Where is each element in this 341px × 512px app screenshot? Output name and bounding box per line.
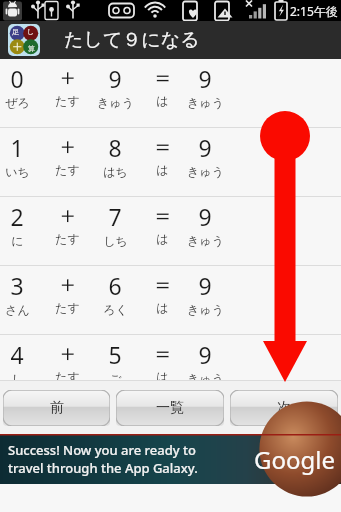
staticText: 9 bbox=[198, 201, 212, 232]
staticText: は bbox=[156, 300, 169, 315]
staticText: きゅう bbox=[187, 302, 224, 317]
staticText: たして９になる bbox=[64, 28, 200, 52]
staticText: Success! Now you are ready to bbox=[8, 441, 196, 459]
staticText: きゅう bbox=[187, 371, 224, 385]
staticText: ろく bbox=[103, 302, 128, 317]
button[interactable]: Success! Now you are ready to bbox=[0, 434, 341, 484]
staticText: ＋ bbox=[56, 201, 79, 230]
staticText: ＝ bbox=[151, 339, 174, 368]
staticText: 9 bbox=[198, 270, 212, 301]
staticText: ＋ bbox=[56, 63, 79, 92]
staticText: ＝ bbox=[151, 201, 174, 230]
staticText: 前 bbox=[50, 399, 64, 417]
staticText: 9 bbox=[108, 63, 122, 94]
staticText: 8 bbox=[108, 132, 122, 163]
staticText: 1 bbox=[10, 132, 24, 163]
staticText: は bbox=[156, 231, 169, 246]
staticText: ＋ bbox=[56, 270, 79, 299]
staticText: ＝ bbox=[151, 270, 174, 299]
staticText: ぜろ bbox=[5, 95, 30, 110]
staticText: 2 bbox=[10, 201, 24, 232]
staticText: に bbox=[11, 233, 24, 248]
button[interactable]: 次 bbox=[230, 390, 338, 426]
staticText: 9 bbox=[198, 132, 212, 163]
staticText: たす bbox=[55, 93, 80, 108]
staticText: 9 bbox=[198, 339, 212, 370]
staticText: し bbox=[27, 27, 35, 36]
staticText: きゅう bbox=[97, 95, 134, 110]
staticText: たす bbox=[55, 162, 80, 177]
staticText: さん bbox=[5, 302, 30, 317]
staticText: 9 bbox=[198, 63, 212, 94]
button[interactable]: 2 bbox=[0, 197, 341, 266]
staticText: ＋ bbox=[56, 339, 79, 368]
button[interactable]: 3 bbox=[0, 266, 341, 335]
staticText: たす bbox=[55, 300, 80, 315]
staticText: は bbox=[156, 369, 169, 384]
staticText: きゅう bbox=[187, 164, 224, 179]
button[interactable]: 0 bbox=[0, 59, 341, 128]
staticText: たす bbox=[55, 369, 80, 384]
button[interactable]: 一覧 bbox=[116, 390, 224, 426]
staticText: 6 bbox=[108, 270, 122, 301]
staticText: 5 bbox=[108, 339, 122, 370]
staticText: ＝ bbox=[151, 132, 174, 161]
staticText: は bbox=[156, 162, 169, 177]
staticText: ＝ bbox=[151, 63, 174, 92]
staticText: 次 bbox=[277, 399, 291, 417]
staticText: はち bbox=[103, 164, 128, 179]
staticText: ＋ bbox=[56, 132, 79, 161]
staticText: ご bbox=[109, 371, 122, 385]
staticText: 3 bbox=[10, 270, 24, 301]
staticText: 算 bbox=[28, 44, 35, 53]
staticText: 足 bbox=[12, 27, 19, 36]
staticText: 0 bbox=[10, 63, 24, 94]
staticText: しち bbox=[103, 233, 128, 248]
staticText: 一覧 bbox=[156, 399, 184, 417]
staticText: 2:15午後 bbox=[290, 3, 338, 19]
staticText: きゅう bbox=[187, 95, 224, 110]
button[interactable]: 前 bbox=[3, 390, 110, 426]
staticText: は bbox=[156, 93, 169, 108]
staticText: 4 bbox=[10, 339, 24, 370]
button[interactable]: 4 bbox=[0, 335, 341, 381]
staticText: 7 bbox=[108, 201, 122, 232]
staticText: し bbox=[11, 371, 24, 385]
button[interactable]: 1 bbox=[0, 128, 341, 197]
staticText: きゅう bbox=[187, 233, 224, 248]
staticText: いち bbox=[5, 164, 30, 179]
staticText: たす bbox=[55, 231, 80, 246]
staticText: travel through the App Galaxy. bbox=[8, 459, 198, 477]
staticText: Google bbox=[254, 443, 335, 476]
